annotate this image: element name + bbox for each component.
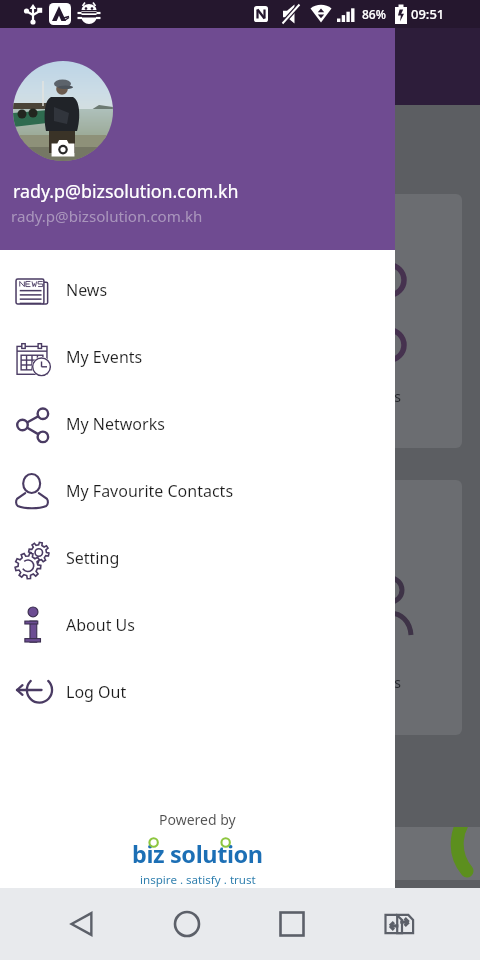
button[interactable]: News	[0, 256, 395, 323]
staticText: My Networks	[66, 413, 165, 435]
button[interactable]: Home	[159, 896, 215, 952]
staticText: DEVELOPMENT	[44, 855, 151, 875]
staticText: MOBILE APP	[44, 832, 148, 855]
staticText: Setting	[66, 547, 120, 569]
button[interactable]: My Favourite Contacts	[0, 457, 395, 524]
staticText: inspire . satisfy . trust	[140, 872, 256, 888]
staticText: Powered by	[159, 810, 236, 829]
button[interactable]: About Us	[0, 591, 395, 658]
staticText: rady.p@bizsolution.com.kh	[11, 206, 203, 227]
staticText: About Us	[66, 614, 135, 636]
button[interactable]: Setting	[0, 524, 395, 591]
button[interactable]: Change photo	[50, 138, 76, 158]
staticText: Details	[356, 673, 401, 692]
button[interactable]: Switch app	[371, 896, 427, 952]
staticText: biz solution	[132, 838, 263, 870]
staticText: rady.p@bizsolution.com.kh	[13, 179, 239, 203]
button[interactable]: Recents	[264, 896, 320, 952]
staticText: News	[66, 279, 108, 301]
staticText: My Favourite Contacts	[66, 480, 234, 502]
staticText: Details	[356, 387, 401, 406]
staticText: 86%	[362, 6, 386, 22]
staticText: Log Out	[66, 681, 127, 703]
staticText: 09:51	[411, 5, 445, 23]
staticText: My Events	[66, 346, 143, 368]
button[interactable]: My Events	[0, 323, 395, 390]
button[interactable]: My Networks	[0, 390, 395, 457]
button[interactable]: Back	[54, 896, 110, 952]
button[interactable]: Log Out	[0, 658, 395, 725]
